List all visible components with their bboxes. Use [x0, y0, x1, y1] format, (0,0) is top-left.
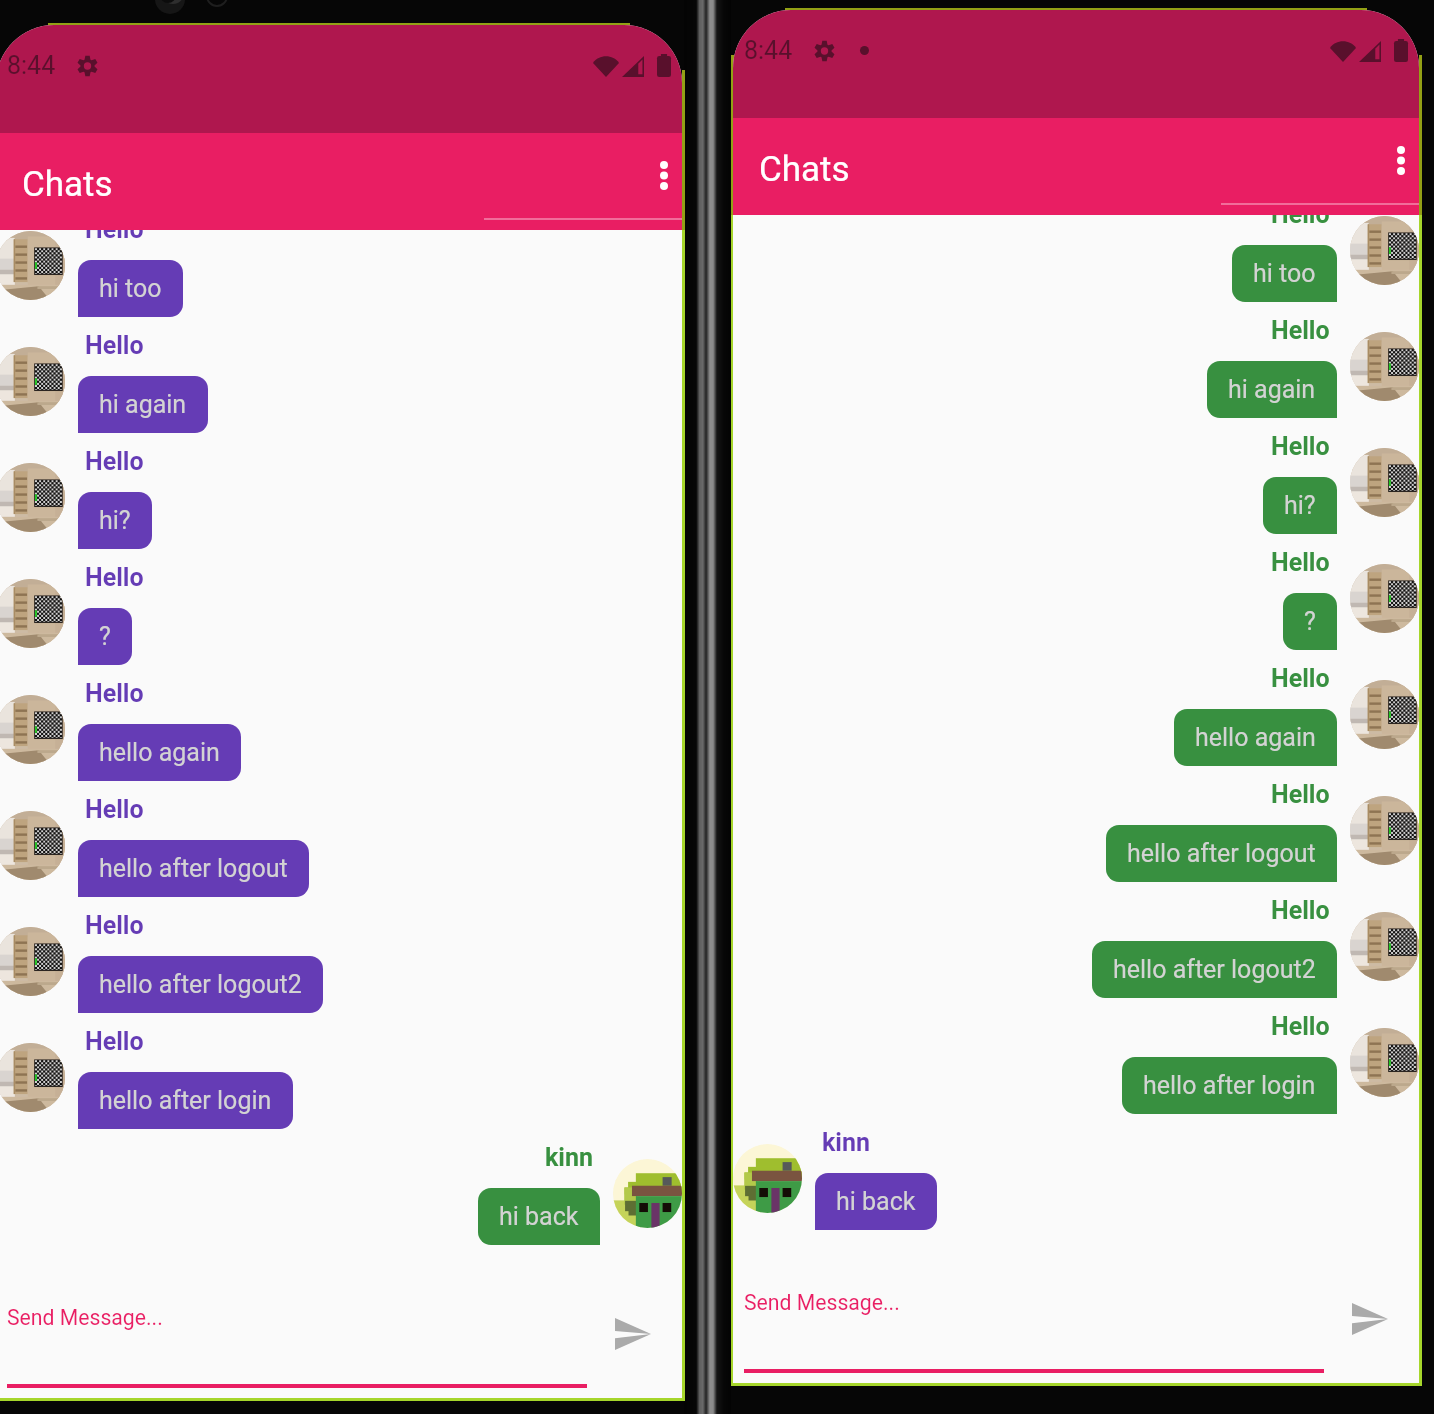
staticText: Hello	[85, 230, 144, 244]
staticText: Chats	[22, 164, 113, 205]
button[interactable]: More options	[1375, 134, 1419, 186]
button[interactable]: hi?	[78, 492, 152, 549]
staticText: Send Message...	[744, 1290, 900, 1315]
button[interactable]: hello after logout2	[1092, 941, 1337, 998]
button[interactable]: Hello	[0, 679, 682, 795]
staticText: 8:44	[744, 36, 793, 65]
button[interactable]: Hello	[733, 432, 1419, 548]
staticText: Hello	[1271, 215, 1330, 229]
button[interactable]: hi?	[1263, 477, 1337, 534]
staticText: Hello	[85, 795, 144, 824]
button[interactable]: kinn	[0, 1143, 682, 1259]
button[interactable]: Hello	[733, 780, 1419, 896]
staticText: Hello	[1271, 896, 1330, 925]
staticText: Hello	[1271, 1012, 1330, 1041]
button[interactable]: Send	[605, 1306, 661, 1362]
button[interactable]: Send	[1342, 1291, 1398, 1347]
staticText: hello after logout	[1127, 839, 1316, 868]
staticText: Hello	[85, 679, 144, 708]
staticText: Hello	[85, 331, 144, 360]
staticText: Hello	[85, 911, 144, 940]
button[interactable]: Hello	[733, 548, 1419, 664]
staticText: Hello	[85, 1027, 144, 1056]
button[interactable]: Hello	[0, 563, 682, 679]
staticText: hi too	[1253, 259, 1316, 288]
button[interactable]: hello after logout2	[78, 956, 323, 1013]
button[interactable]: hello after logout	[1106, 825, 1337, 882]
staticText: hi back	[836, 1187, 916, 1216]
button[interactable]: hi again	[1207, 361, 1337, 418]
button[interactable]: hello again	[78, 724, 241, 781]
button[interactable]: hi again	[78, 376, 208, 433]
staticText: hello after login	[1143, 1071, 1316, 1100]
staticText: hi again	[1228, 375, 1316, 404]
staticText: Hello	[1271, 316, 1330, 345]
staticText: Hello	[1271, 432, 1330, 461]
button[interactable]: hi back	[815, 1173, 937, 1230]
staticText: ?	[99, 622, 111, 651]
staticText: Send Message...	[7, 1305, 163, 1330]
button[interactable]: kinn	[733, 1128, 1419, 1244]
staticText: hello after logout	[99, 854, 288, 883]
staticText: Hello	[1271, 548, 1330, 577]
button[interactable]: Send Message...	[7, 1298, 587, 1388]
staticText: Hello	[1271, 664, 1330, 693]
button[interactable]: Hello	[0, 447, 682, 563]
staticText: Hello	[1271, 780, 1330, 809]
button[interactable]: Hello	[0, 911, 682, 1027]
staticText: Hello	[85, 447, 144, 476]
button[interactable]: Hello	[733, 896, 1419, 1012]
staticText: ?	[1304, 607, 1316, 636]
button[interactable]: hi too	[78, 260, 183, 317]
staticText: hello after logout2	[99, 970, 302, 999]
staticText: kinn	[822, 1128, 870, 1157]
button[interactable]: hello again	[1174, 709, 1337, 766]
button[interactable]: hello after logout	[78, 840, 309, 897]
staticText: hi?	[99, 506, 131, 535]
staticText: hello again	[99, 738, 220, 767]
staticText: Hello	[85, 563, 144, 592]
staticText: Chats	[759, 149, 850, 190]
button[interactable]: Send Message...	[744, 1283, 1324, 1373]
button[interactable]: ?	[1283, 593, 1337, 650]
staticText: 8:44	[7, 51, 56, 80]
button[interactable]: More options	[638, 149, 682, 201]
staticText: hello after logout2	[1113, 955, 1316, 984]
button[interactable]: Hello	[0, 1027, 682, 1143]
staticText: hi?	[1284, 491, 1316, 520]
button[interactable]: ?	[78, 608, 132, 665]
button[interactable]: Hello	[733, 215, 1419, 316]
button[interactable]: hi too	[1232, 245, 1337, 302]
staticText: kinn	[545, 1143, 593, 1172]
staticText: hello after login	[99, 1086, 272, 1115]
button[interactable]: Hello	[733, 316, 1419, 432]
button[interactable]: Hello	[733, 664, 1419, 780]
button[interactable]: hi back	[478, 1188, 600, 1245]
button[interactable]: hello after login	[78, 1072, 293, 1129]
staticText: hi too	[99, 274, 162, 303]
staticText: hello again	[1195, 723, 1316, 752]
button[interactable]: Hello	[0, 795, 682, 911]
button[interactable]: Hello	[0, 230, 682, 331]
staticText: hi again	[99, 390, 187, 419]
staticText: hi back	[499, 1202, 579, 1231]
button[interactable]: Hello	[0, 331, 682, 447]
button[interactable]: Hello	[733, 1012, 1419, 1128]
button[interactable]: hello after login	[1122, 1057, 1337, 1114]
